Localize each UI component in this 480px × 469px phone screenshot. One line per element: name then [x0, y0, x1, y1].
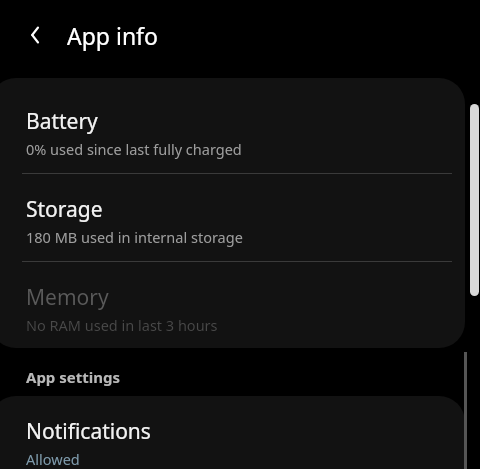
button[interactable]: Memory [0, 262, 465, 348]
staticText: No RAM used in last 3 hours [26, 315, 218, 335]
button[interactable]: Battery [0, 78, 465, 173]
button[interactable]: Back [19, 18, 53, 52]
staticText: 0% used since last fully charged [26, 139, 242, 159]
staticText: 180 MB used in internal storage [26, 227, 243, 247]
button[interactable]: Storage [0, 174, 465, 261]
staticText: Storage [26, 195, 103, 224]
staticText: Memory [26, 283, 109, 312]
staticText: App info [67, 20, 158, 51]
staticText: Battery [26, 107, 98, 136]
staticText: Notifications [26, 417, 151, 446]
staticText: App settings [26, 367, 120, 387]
button[interactable]: Notifications [0, 396, 465, 469]
staticText: Allowed [26, 449, 80, 469]
